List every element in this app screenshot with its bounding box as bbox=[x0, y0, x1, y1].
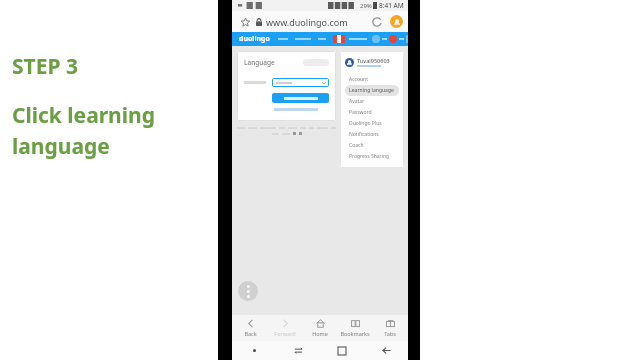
staticText: Home bbox=[312, 330, 328, 337]
button[interactable]: Coach bbox=[345, 140, 399, 151]
staticText: Learning language bbox=[349, 87, 394, 94]
button[interactable]: Toolbar action bbox=[389, 35, 397, 43]
staticText: Progress Sharing bbox=[349, 153, 390, 160]
staticText: Password bbox=[349, 109, 372, 116]
button[interactable]: Account bbox=[345, 74, 399, 85]
staticText: Avatar bbox=[349, 98, 365, 105]
staticText: Notifications bbox=[349, 131, 379, 138]
button[interactable]: Toolbar action bbox=[372, 35, 380, 43]
button[interactable]: Duolingo Plus bbox=[345, 118, 399, 129]
staticText: STEP 3 bbox=[12, 52, 78, 81]
button[interactable]: Save changes bbox=[303, 59, 329, 66]
button[interactable]: Bookmark bbox=[239, 16, 251, 28]
button[interactable]: Add a new language course bbox=[272, 93, 329, 103]
staticText: Click learning language bbox=[12, 101, 155, 160]
staticText: Coach bbox=[349, 142, 364, 149]
staticText: Account bbox=[349, 76, 369, 83]
button[interactable]: Avatar bbox=[345, 96, 399, 107]
button[interactable]: Home bbox=[303, 315, 337, 341]
button[interactable]: Progress Sharing bbox=[345, 151, 399, 162]
button[interactable]: Tabs bbox=[373, 315, 407, 341]
button[interactable]: Menu bbox=[238, 281, 258, 301]
staticText: Tabs bbox=[384, 330, 396, 337]
button[interactable]: Back bbox=[233, 315, 267, 341]
button[interactable]: Back bbox=[364, 341, 408, 360]
button[interactable]: Forward bbox=[268, 315, 302, 341]
staticText: Tuval950603 bbox=[357, 57, 390, 64]
staticText: 8:41 AM bbox=[379, 1, 404, 10]
button[interactable]: Bookmarks bbox=[338, 315, 372, 341]
button[interactable]: Learning language bbox=[345, 85, 399, 96]
button[interactable]: Language flag bbox=[333, 35, 345, 43]
button[interactable]: Password bbox=[345, 107, 399, 118]
button[interactable]: Recents bbox=[276, 341, 320, 360]
button[interactable]: Reload bbox=[370, 15, 384, 29]
staticText: www.duolingo.com bbox=[266, 16, 348, 28]
button[interactable]: Toolbar action bbox=[406, 35, 408, 43]
staticText: Language bbox=[244, 58, 275, 67]
staticText: Bookmarks bbox=[340, 330, 370, 337]
staticText: duolingo bbox=[239, 34, 270, 44]
staticText: Back bbox=[244, 330, 257, 337]
staticText: 29% bbox=[360, 2, 372, 10]
button[interactable]: Notifications bbox=[345, 129, 399, 140]
staticText: Duolingo Plus bbox=[349, 120, 382, 127]
button[interactable]: Profile bbox=[390, 15, 403, 28]
button[interactable]: Home bbox=[320, 341, 364, 360]
button[interactable]: Learning language dropdown bbox=[272, 78, 329, 87]
staticText: Forward bbox=[274, 330, 296, 337]
